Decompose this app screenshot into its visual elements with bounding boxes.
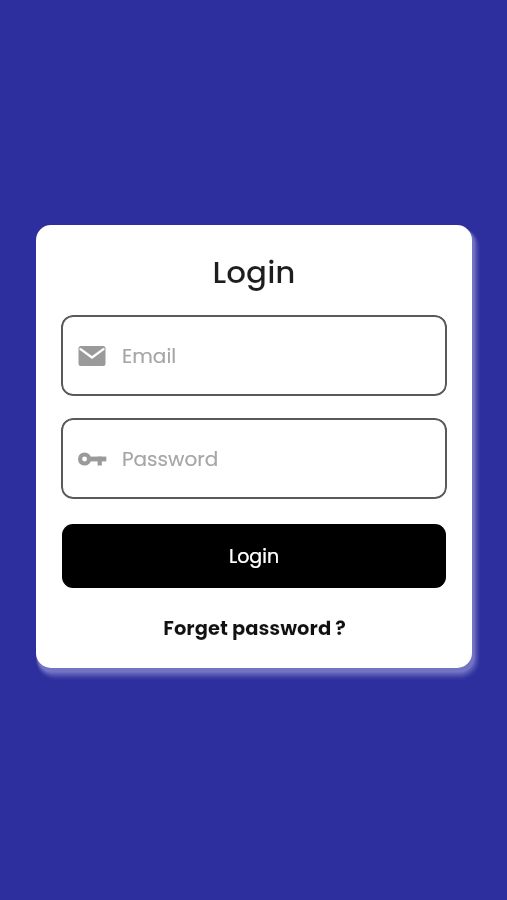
staticText: Login [229,543,280,570]
other: Password [78,445,106,473]
other: Email [78,342,106,370]
button[interactable]: Login [62,524,446,588]
staticText: Forget password ? [163,615,346,642]
staticText: Login [36,250,472,293]
staticText: Email [122,342,177,370]
button[interactable]: Email [61,315,447,396]
button[interactable]: Forget password ? [157,613,352,644]
button[interactable]: Password [61,418,447,499]
staticText: Password [122,445,219,473]
